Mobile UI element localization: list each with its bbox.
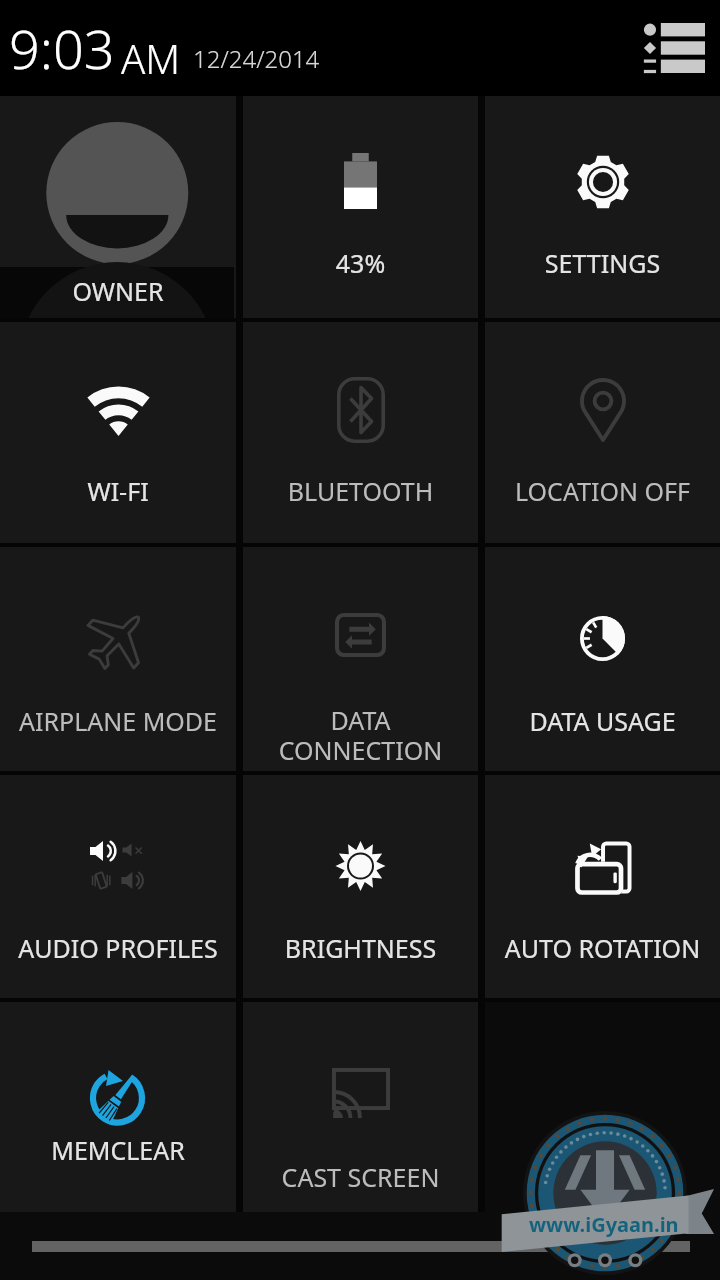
staticText: AM (121, 31, 181, 85)
staticText: OWNER (0, 274, 236, 308)
staticText: WI-FI (0, 474, 236, 508)
staticText: SETTINGS (485, 246, 720, 280)
staticText: DATA USAGE (485, 704, 720, 738)
staticText: AIRPLANE MODE (0, 704, 236, 738)
button[interactable]: LOCATION OFF (485, 322, 720, 543)
button[interactable]: DATA CONNECTION (243, 547, 478, 771)
button[interactable]: SETTINGS (485, 96, 720, 318)
button[interactable]: AUDIO PROFILES (0, 775, 236, 998)
staticText: AUDIO PROFILES (0, 931, 236, 965)
button[interactable]: WI-FI (0, 322, 236, 543)
button[interactable]: 43% (243, 96, 478, 318)
button[interactable]: DATA USAGE (485, 547, 720, 771)
staticText: BRIGHTNESS (243, 931, 478, 965)
staticText: CAST SCREEN (243, 1160, 478, 1194)
staticText: 43% (243, 246, 478, 280)
button[interactable]: Notification list (634, 13, 714, 83)
staticText: 12/24/2014 (193, 42, 320, 75)
button[interactable]: MEMCLEAR (0, 1002, 236, 1212)
button[interactable]: OWNER (0, 96, 236, 318)
staticText: DATA CONNECTION (243, 703, 478, 767)
staticText: BLUETOOTH (243, 474, 478, 508)
button[interactable]: BRIGHTNESS (243, 775, 478, 998)
staticText: www.iGyaan.in (529, 1211, 679, 1238)
staticText: LOCATION OFF (485, 474, 720, 508)
staticText: 9:03 (9, 11, 115, 85)
button[interactable]: AIRPLANE MODE (0, 547, 236, 771)
button[interactable]: BLUETOOTH (243, 322, 478, 543)
staticText: MEMCLEAR (0, 1133, 236, 1167)
staticText: AUTO ROTATION (485, 931, 720, 965)
button[interactable]: AUTO ROTATION (485, 775, 720, 998)
button[interactable]: CAST SCREEN (243, 1002, 478, 1212)
